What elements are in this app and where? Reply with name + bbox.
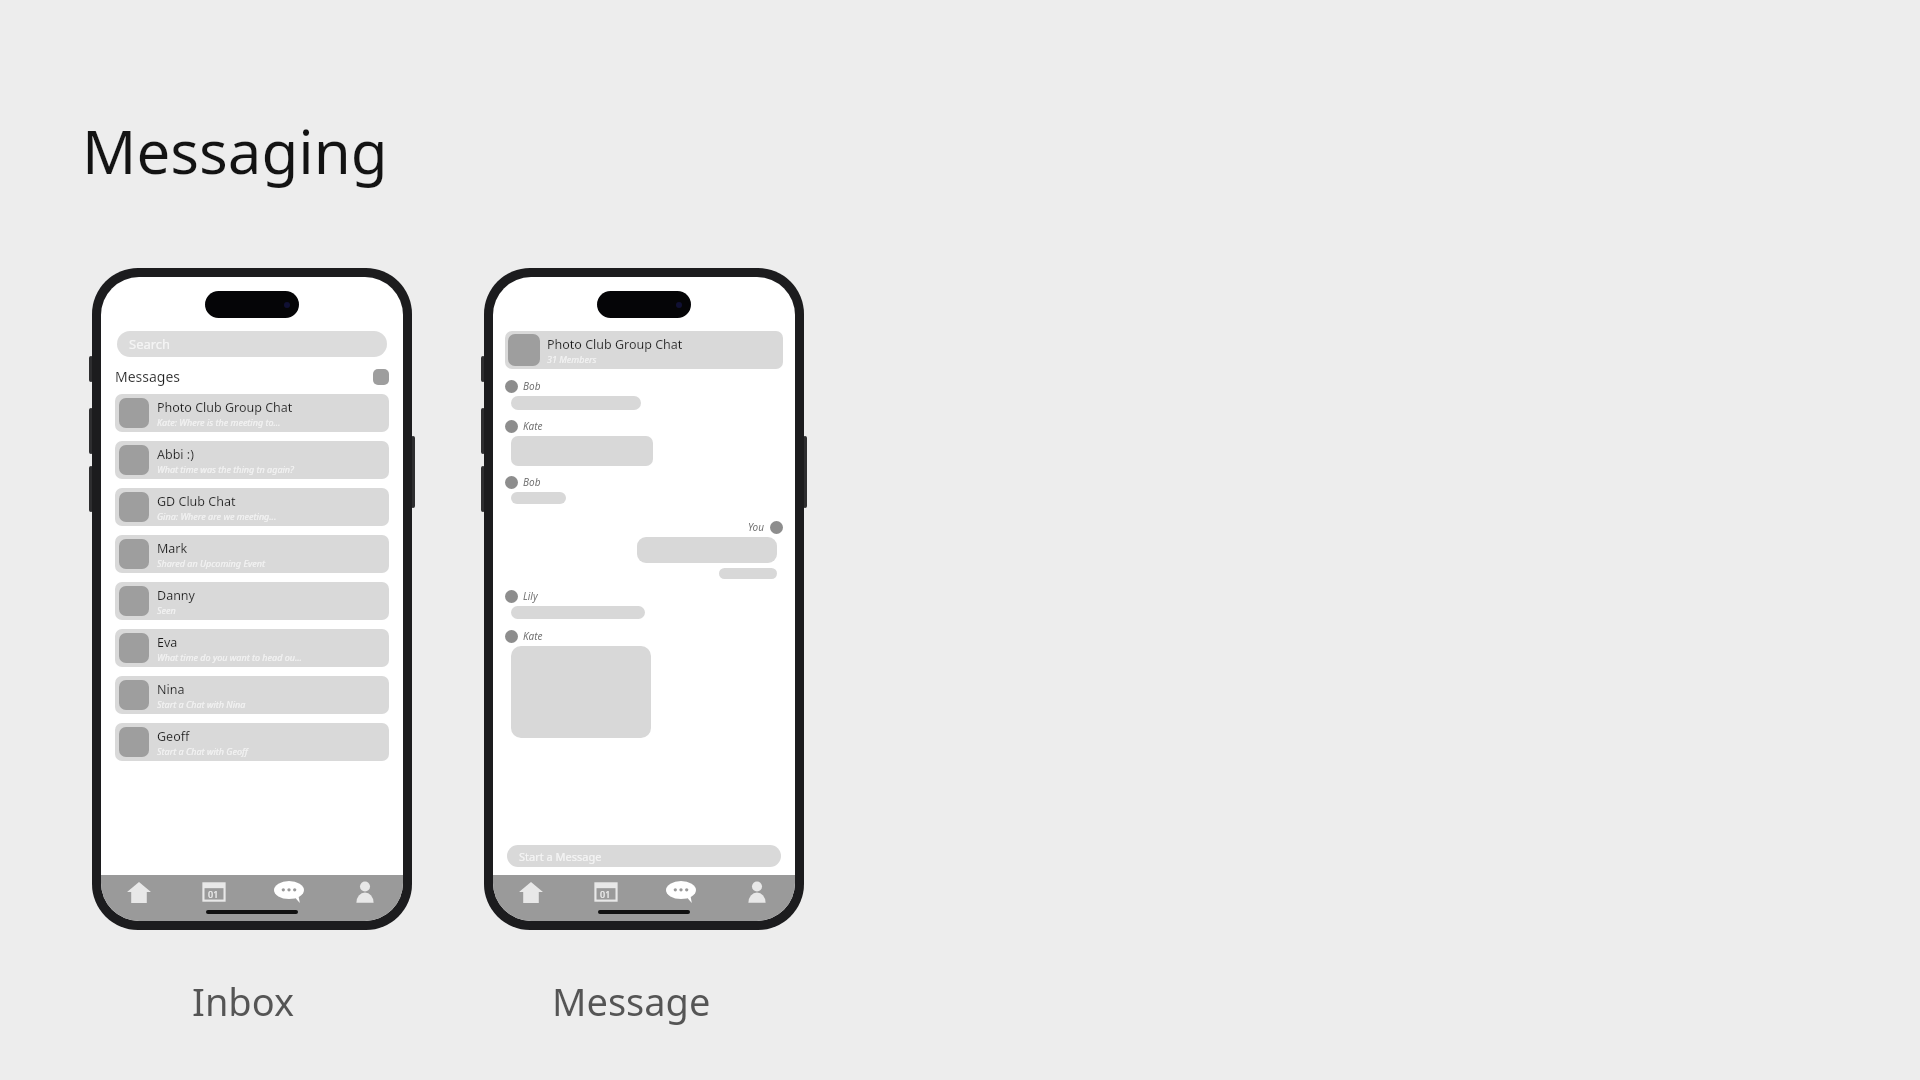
staticText: Kate: Where is the meeting to... bbox=[157, 416, 281, 428]
button[interactable]: Geoff bbox=[115, 723, 389, 761]
staticText: Abbi :) bbox=[157, 446, 194, 463]
staticText: Shared an Upcoming Event bbox=[157, 557, 265, 569]
staticText: Kate bbox=[523, 629, 543, 643]
button[interactable]: Danny bbox=[115, 582, 389, 620]
staticText: Photo Club Group Chat bbox=[157, 399, 293, 416]
staticText: Start a Chat with Geoff bbox=[157, 745, 248, 757]
button[interactable]: Eva bbox=[115, 629, 389, 667]
button[interactable]: Home bbox=[101, 875, 176, 909]
staticText: Messages bbox=[115, 367, 181, 386]
button[interactable]: GD Club Chat bbox=[115, 488, 389, 526]
button[interactable]: Calendar bbox=[568, 875, 643, 909]
staticText: Danny bbox=[157, 587, 195, 604]
staticText: You bbox=[748, 520, 765, 534]
staticText: 01 bbox=[208, 888, 219, 900]
button[interactable]: Home bbox=[493, 875, 568, 909]
button[interactable]: Messages bbox=[643, 875, 719, 909]
staticText: 01 bbox=[600, 888, 611, 900]
button[interactable]: Profile bbox=[327, 875, 403, 909]
staticText: Message bbox=[552, 975, 711, 1027]
staticText: What time do you want to head ou... bbox=[157, 651, 302, 663]
button[interactable]: Photo Club Group Chat bbox=[115, 394, 389, 432]
button[interactable]: Profile bbox=[719, 875, 795, 909]
staticText: Bob bbox=[523, 379, 541, 393]
staticText: Start a Chat with Nina bbox=[157, 698, 246, 710]
staticText: Photo Club Group Chat bbox=[547, 336, 683, 353]
staticText: GD Club Chat bbox=[157, 493, 236, 510]
button[interactable]: Messages bbox=[251, 875, 327, 909]
staticText: Nina bbox=[157, 681, 185, 698]
staticText: Kate bbox=[523, 419, 543, 433]
staticText: Eva bbox=[157, 634, 178, 651]
staticText: Bob bbox=[523, 475, 541, 489]
button[interactable]: Nina bbox=[115, 676, 389, 714]
staticText: Start a Message bbox=[519, 849, 602, 864]
staticText: 31 Members bbox=[547, 353, 597, 365]
staticText: Lily bbox=[523, 589, 538, 603]
button[interactable]: Profile bbox=[373, 369, 389, 385]
staticText: Seen bbox=[157, 604, 176, 616]
staticText: Mark bbox=[157, 540, 188, 557]
staticText: Inbox bbox=[192, 975, 295, 1027]
staticText: Search bbox=[129, 335, 171, 353]
button[interactable]: Mark bbox=[115, 535, 389, 573]
staticText: Messaging bbox=[82, 110, 388, 192]
staticText: Gina: Where are we meeting... bbox=[157, 510, 277, 522]
button[interactable]: Calendar bbox=[176, 875, 251, 909]
staticText: Geoff bbox=[157, 728, 190, 745]
button[interactable]: Start a Message bbox=[507, 845, 781, 867]
button[interactable]: Abbi :) bbox=[115, 441, 389, 479]
staticText: What time was the thing tn again? bbox=[157, 463, 294, 475]
button[interactable]: Photo Club Group Chat bbox=[505, 331, 783, 369]
button[interactable]: Search bbox=[117, 331, 387, 357]
